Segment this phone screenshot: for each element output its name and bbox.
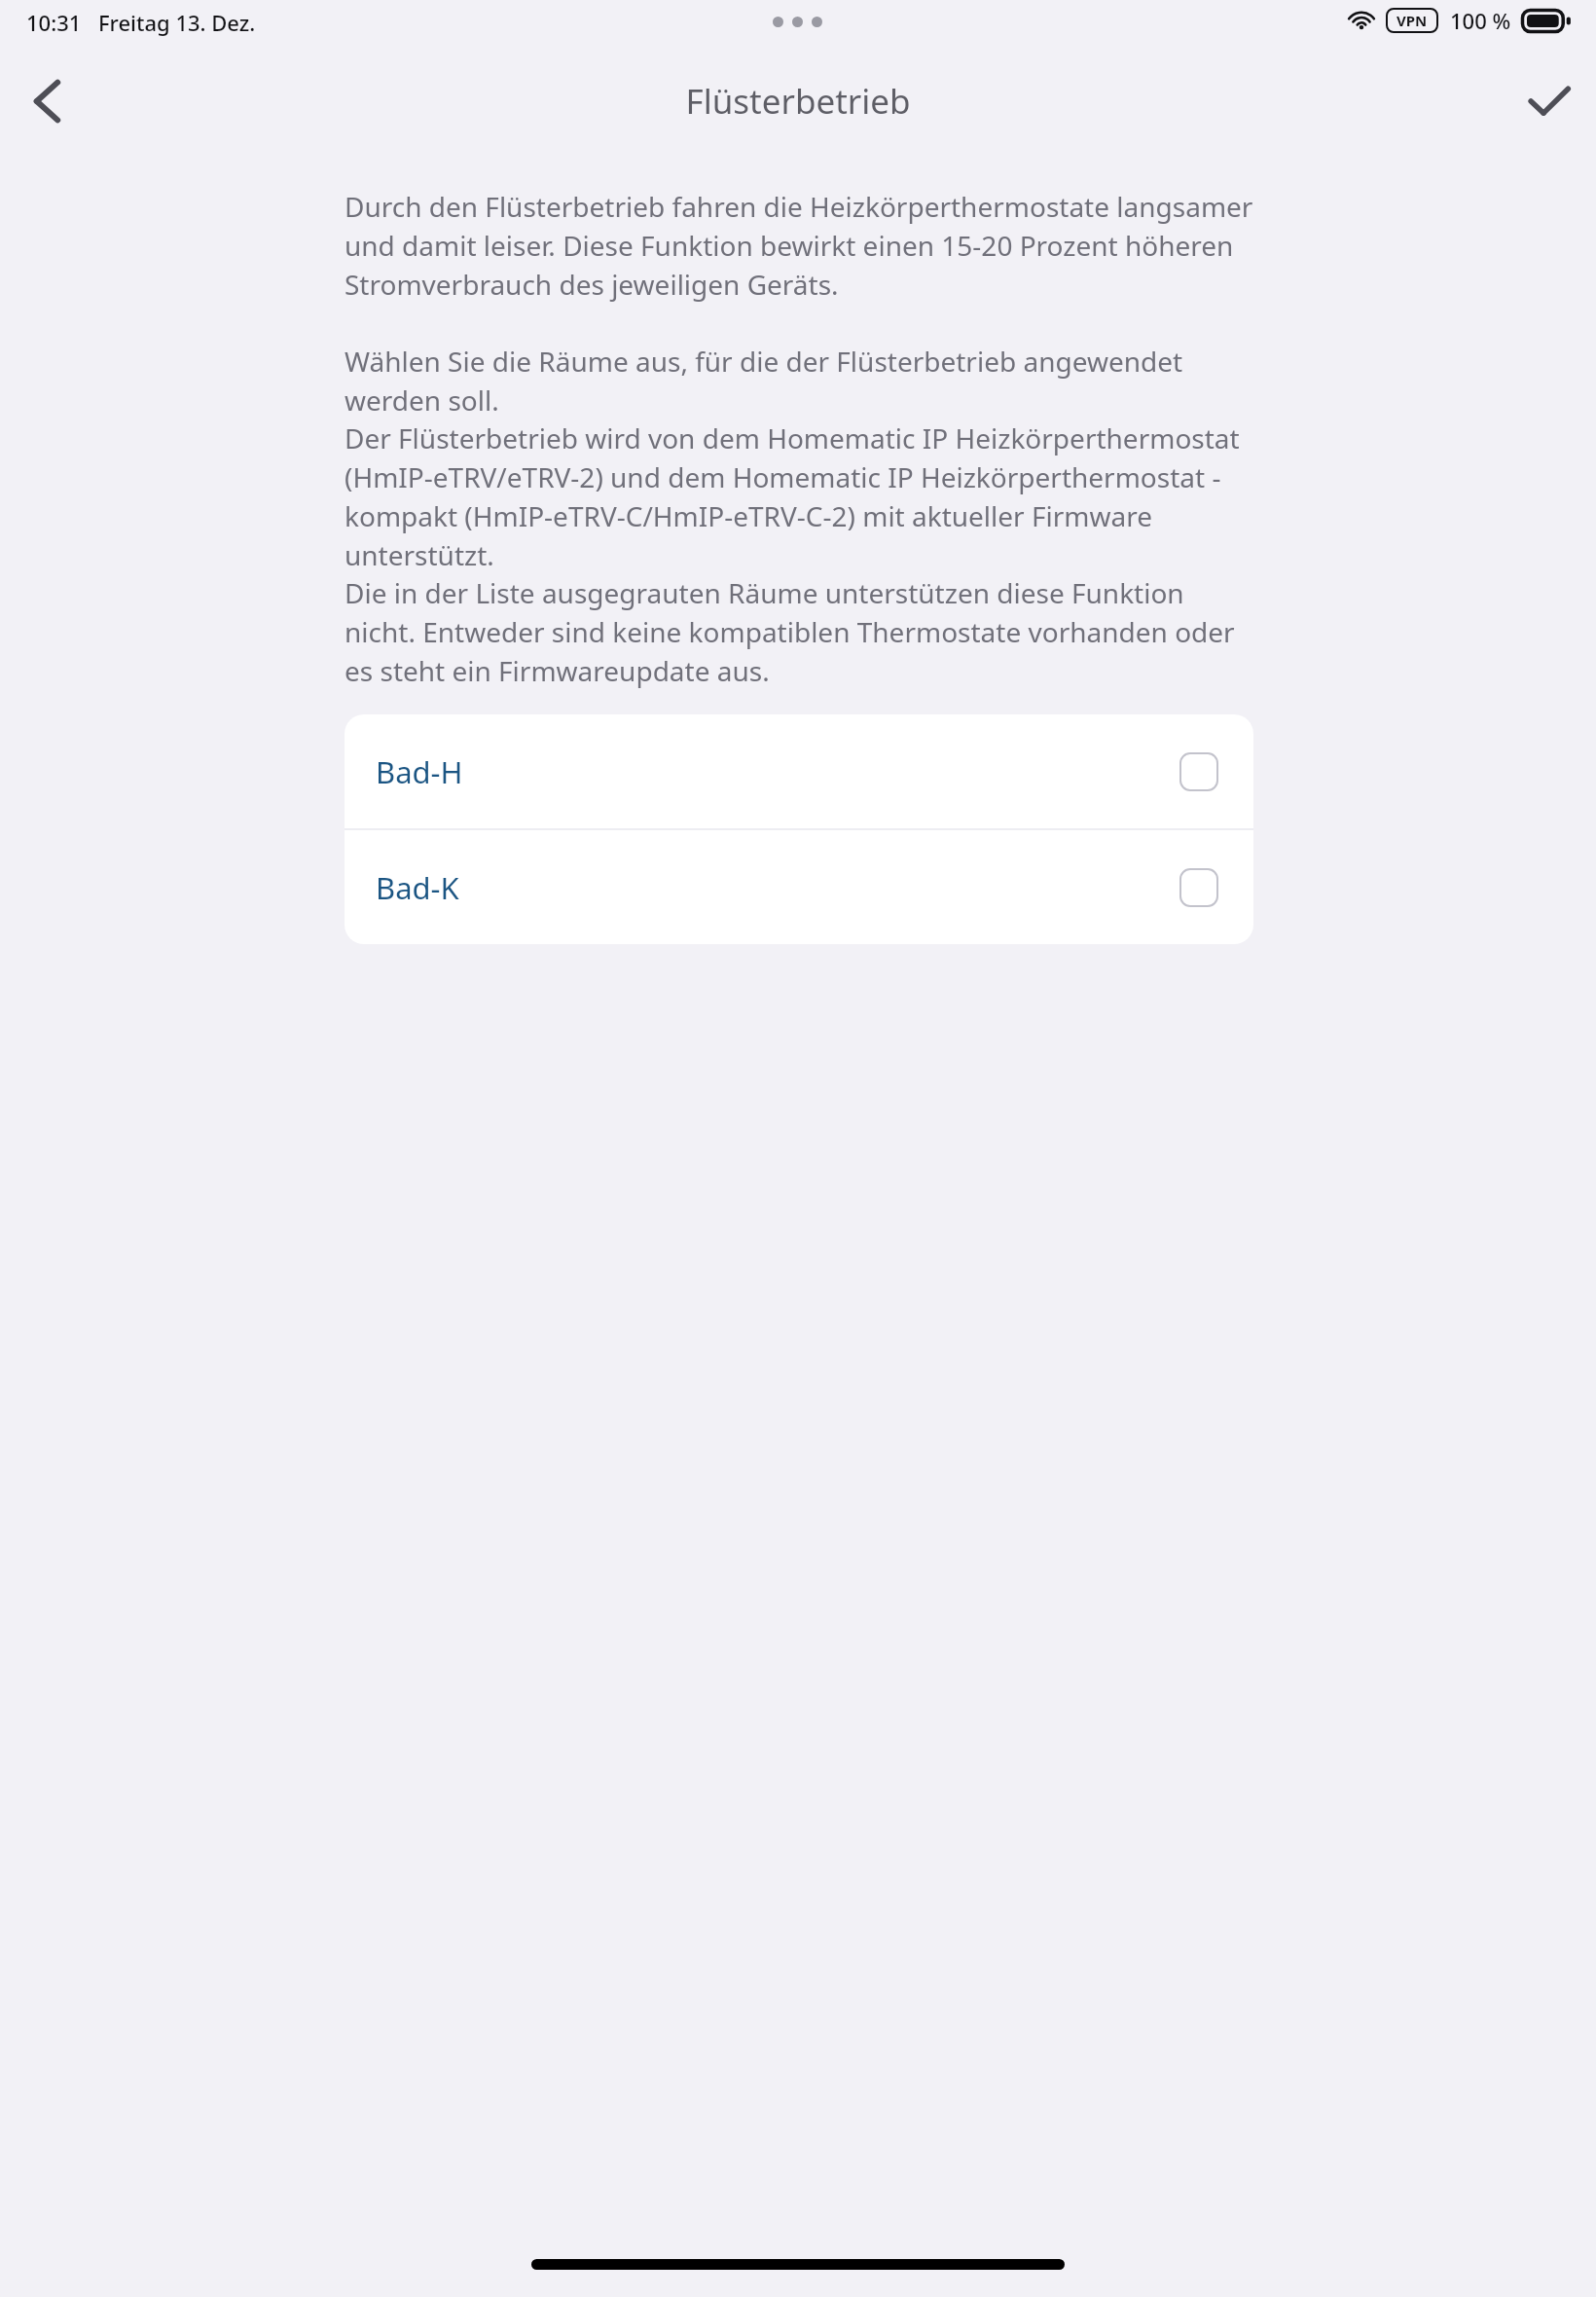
staticText: 100 % — [1450, 6, 1511, 35]
staticText: Die in der Liste ausgegrauten Räume unte… — [345, 574, 1261, 690]
staticText: VPN — [1396, 11, 1428, 30]
staticText: Freitag 13. Dez. — [98, 8, 256, 37]
button[interactable]: Bestätigen — [1506, 56, 1592, 146]
button[interactable]: Bad-H — [345, 714, 1253, 828]
staticText: 10:31 — [26, 8, 82, 37]
button[interactable]: Bad-K — [345, 830, 1253, 944]
staticText: Bad-H — [376, 751, 463, 792]
button[interactable]: Zurück — [4, 56, 90, 146]
staticText: Wählen Sie die Räume aus, für die der Fl… — [345, 343, 1261, 419]
staticText: Der Flüsterbetrieb wird von dem Homemati… — [345, 419, 1261, 574]
staticText: Durch den Flüsterbetrieb fahren die Heiz… — [345, 188, 1261, 304]
staticText: Flüsterbetrieb — [685, 78, 911, 125]
staticText: Bad-K — [376, 867, 459, 908]
